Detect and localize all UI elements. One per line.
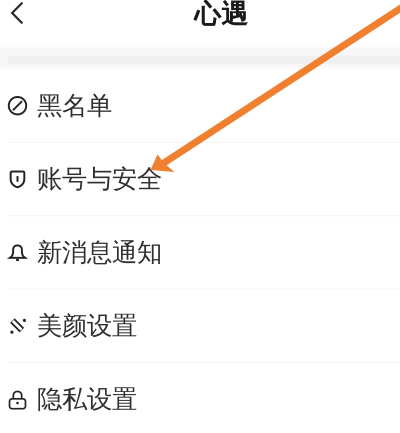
staticText: 黑名单: [37, 90, 112, 121]
button[interactable]: 黑名单: [0, 69, 400, 142]
staticText: 心遇: [194, 0, 248, 30]
staticText: 美颜设置: [37, 310, 137, 341]
staticText: 新消息通知: [37, 237, 162, 268]
button[interactable]: 隐私设置: [0, 363, 400, 433]
button[interactable]: Back: [0, 0, 35, 32]
button[interactable]: 新消息通知: [0, 216, 400, 289]
button[interactable]: 账号与安全: [0, 143, 400, 215]
staticText: 账号与安全: [37, 163, 162, 195]
button[interactable]: 美颜设置: [0, 290, 400, 362]
staticText: 隐私设置: [37, 384, 137, 415]
